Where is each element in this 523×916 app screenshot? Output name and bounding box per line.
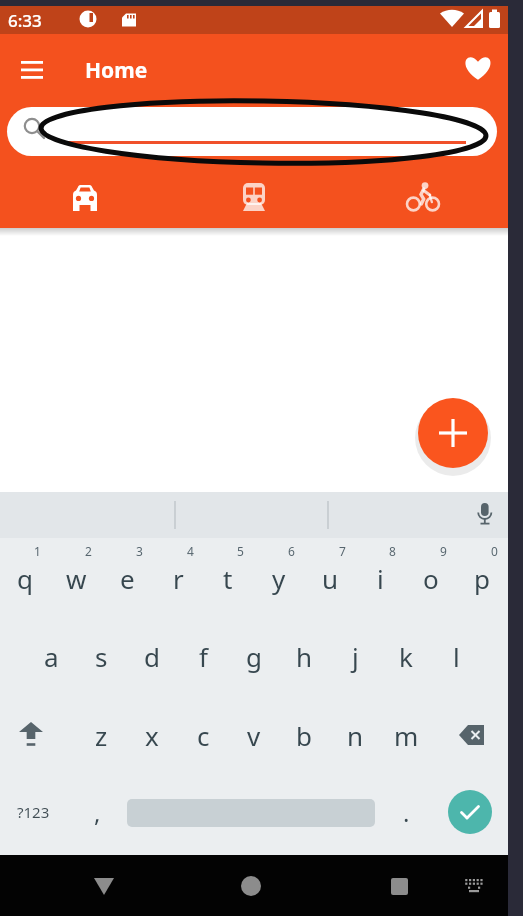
button[interactable]: , <box>72 788 122 836</box>
button[interactable]: n <box>330 711 380 759</box>
button[interactable]: h <box>279 632 329 680</box>
button[interactable]: i <box>355 554 405 602</box>
button[interactable]: r <box>153 554 203 602</box>
button[interactable]: a <box>26 632 76 680</box>
staticText: x <box>145 718 159 753</box>
button[interactable] <box>14 52 50 86</box>
button[interactable]: m <box>381 711 431 759</box>
button[interactable]: f <box>178 632 228 680</box>
button[interactable]: ?123 <box>8 788 58 836</box>
staticText: e <box>120 561 135 596</box>
staticText: f <box>199 639 208 674</box>
staticText: Home <box>85 56 148 85</box>
button[interactable]: o <box>406 554 456 602</box>
button[interactable] <box>80 862 128 910</box>
button[interactable]: k <box>381 632 431 680</box>
button[interactable] <box>448 790 492 834</box>
button[interactable]: e <box>102 554 152 602</box>
button[interactable] <box>7 107 497 156</box>
button[interactable]: s <box>76 632 126 680</box>
button[interactable]: v <box>229 711 279 759</box>
button[interactable]: w <box>51 554 101 602</box>
button[interactable] <box>460 50 496 86</box>
staticText: y <box>272 561 286 596</box>
staticText: ?123 <box>17 802 50 822</box>
staticText: r <box>173 561 184 596</box>
staticText: s <box>95 639 108 674</box>
staticText: n <box>347 718 364 753</box>
staticText: g <box>246 639 262 674</box>
staticText: 1 <box>34 543 41 559</box>
staticText: t <box>223 561 233 596</box>
staticText: k <box>399 639 413 674</box>
button[interactable]: l <box>431 632 481 680</box>
staticText: 8 <box>389 543 396 559</box>
staticText: z <box>95 718 108 753</box>
button[interactable] <box>338 166 507 228</box>
staticText: b <box>296 718 312 753</box>
button[interactable] <box>169 166 338 228</box>
button[interactable] <box>227 862 275 910</box>
staticText: 3 <box>136 543 143 559</box>
button[interactable] <box>6 711 56 759</box>
staticText: a <box>44 639 59 674</box>
staticText: 0 <box>491 543 498 559</box>
button[interactable]: p <box>457 554 507 602</box>
button[interactable] <box>457 868 491 902</box>
button[interactable]: g <box>229 632 279 680</box>
staticText: 6 <box>288 543 295 559</box>
staticText: u <box>322 561 339 596</box>
button[interactable] <box>448 711 498 759</box>
staticText: p <box>474 561 490 596</box>
staticText: q <box>17 561 33 596</box>
button[interactable]: d <box>127 632 177 680</box>
button[interactable]: j <box>330 632 380 680</box>
button[interactable]: . <box>381 788 431 836</box>
staticText: . <box>403 796 410 829</box>
staticText: m <box>394 718 419 753</box>
button[interactable] <box>418 398 488 468</box>
staticText: 5 <box>237 543 244 559</box>
button[interactable]: u <box>305 554 355 602</box>
staticText: 7 <box>339 543 346 559</box>
button[interactable]: x <box>127 711 177 759</box>
staticText: 9 <box>440 543 447 559</box>
staticText: 6:33 <box>8 9 42 32</box>
staticText: d <box>144 639 160 674</box>
staticText: h <box>296 639 313 674</box>
staticText: v <box>247 718 261 753</box>
button[interactable]: t <box>203 554 253 602</box>
staticText: , <box>94 796 101 829</box>
button[interactable]: c <box>178 711 228 759</box>
button[interactable] <box>375 862 423 910</box>
staticText: o <box>423 561 439 596</box>
staticText: j <box>352 639 359 674</box>
staticText: 2 <box>85 543 92 559</box>
button[interactable]: b <box>279 711 329 759</box>
staticText: 4 <box>187 543 194 559</box>
staticText: i <box>377 561 384 596</box>
button[interactable]: z <box>76 711 126 759</box>
button[interactable] <box>0 166 169 228</box>
button[interactable]: q <box>0 554 50 602</box>
staticText: w <box>66 561 87 596</box>
staticText: l <box>453 639 460 674</box>
staticText: c <box>197 718 210 753</box>
button[interactable]: y <box>254 554 304 602</box>
